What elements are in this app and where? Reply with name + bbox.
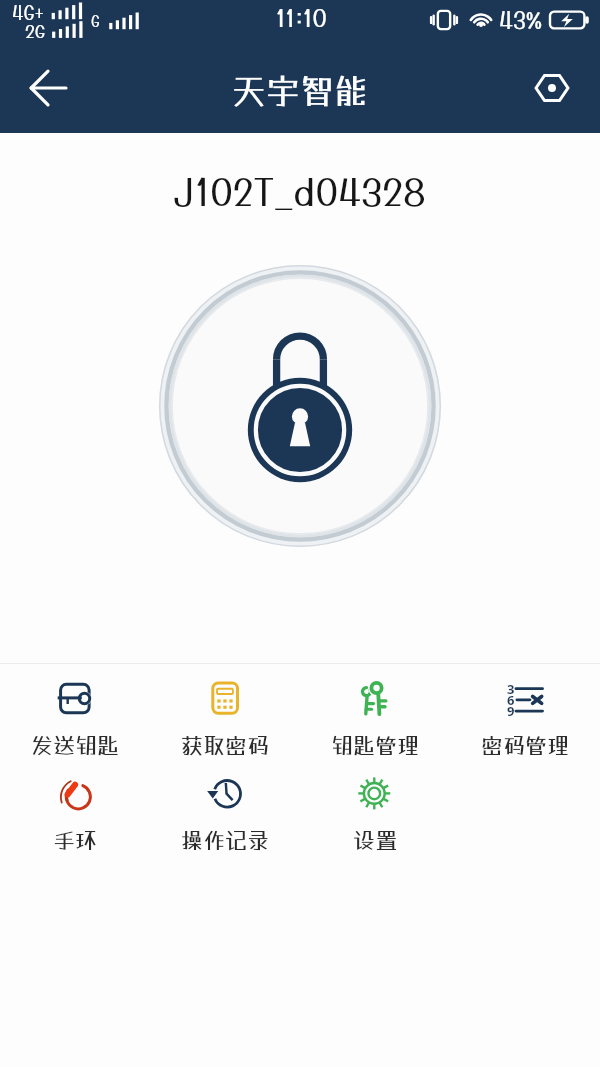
button[interactable]: 发送钥匙 (0, 664, 150, 759)
button[interactable]: 手环 (0, 759, 150, 854)
staticText: 6 (507, 691, 515, 709)
staticText: 3 (507, 680, 515, 698)
staticText: 密码管理 (481, 732, 570, 758)
staticText: 9 (507, 702, 515, 720)
button[interactable]: 3 (450, 664, 600, 759)
staticText: 11:10 (276, 3, 327, 31)
staticText: J102T_d04328 (0, 169, 600, 214)
staticText: 4G+ (12, 1, 45, 23)
button[interactable]: Device settings (526, 62, 578, 114)
staticText: 操作记录 (181, 827, 270, 853)
button[interactable]: 设置 (300, 759, 450, 854)
staticText: G (91, 12, 100, 30)
button[interactable]: Unlock (159, 265, 441, 547)
staticText: 获取密码 (181, 732, 270, 758)
staticText: 钥匙管理 (331, 732, 420, 758)
staticText: 43% (499, 6, 543, 33)
button[interactable]: 钥匙管理 (300, 664, 450, 759)
staticText: 发送钥匙 (31, 732, 120, 758)
staticText: 手环 (53, 827, 98, 853)
staticText: 2G (25, 20, 46, 41)
staticText: 天宇智能 (232, 71, 368, 111)
button[interactable]: Back (18, 58, 78, 118)
button[interactable]: 获取密码 (150, 664, 300, 759)
button[interactable]: 操作记录 (150, 759, 300, 854)
staticText: 设置 (353, 827, 398, 853)
